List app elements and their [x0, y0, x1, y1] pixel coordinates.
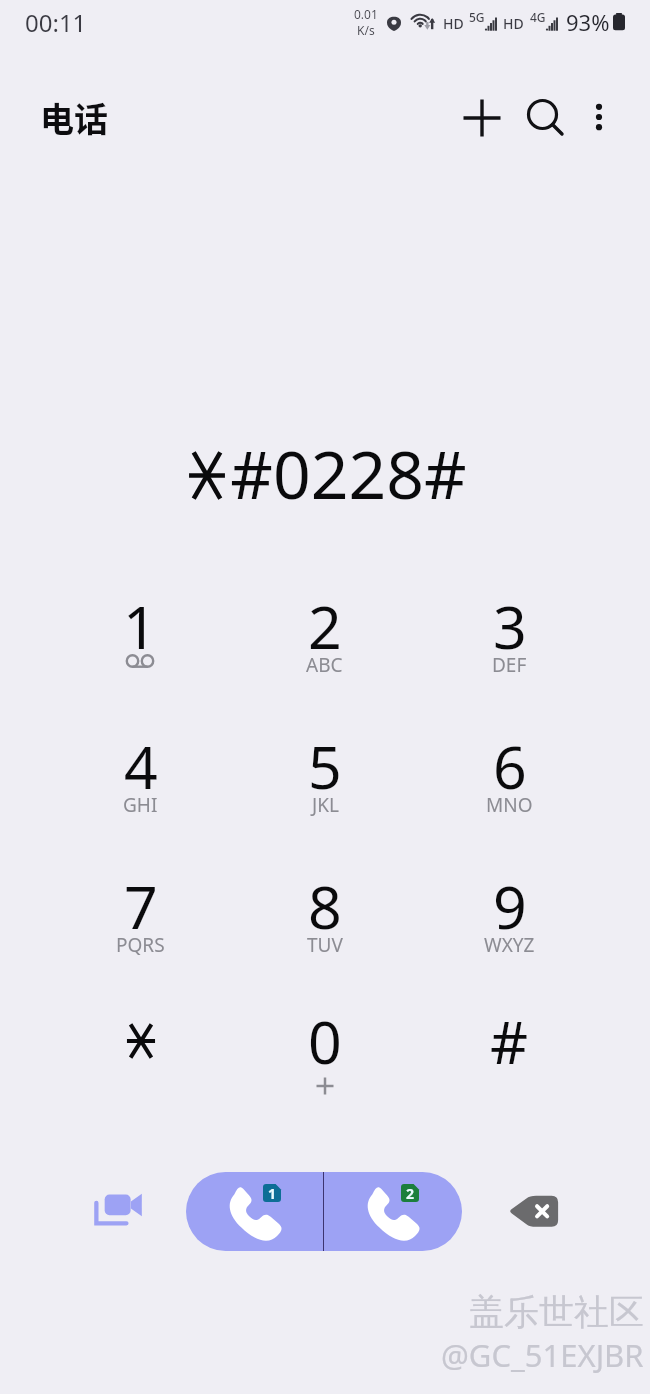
- staticText: #0228#: [230, 428, 467, 518]
- staticText: 2: [406, 1184, 415, 1202]
- button[interactable]: 9: [417, 866, 602, 1001]
- button[interactable]: Add contact: [453, 89, 511, 145]
- button[interactable]: 3: [417, 586, 602, 726]
- staticText: 6: [493, 726, 527, 806]
- staticText: 00:11: [25, 6, 87, 39]
- staticText: K/s: [357, 22, 375, 38]
- button[interactable]: 4: [48, 726, 232, 866]
- staticText: 5G: [469, 9, 485, 25]
- staticText: HD: [503, 14, 524, 33]
- staticText: 8: [308, 866, 342, 946]
- button[interactable]: Search: [517, 89, 575, 145]
- staticText: HD: [443, 14, 464, 33]
- staticText: 3: [493, 586, 527, 666]
- button[interactable]: Call with SIM 2: [324, 1172, 461, 1251]
- button[interactable]: 7: [48, 866, 232, 1001]
- staticText: GHI: [123, 792, 158, 818]
- staticText: 0.01: [354, 6, 378, 22]
- staticText: 1: [123, 586, 157, 666]
- button[interactable]: 2: [232, 586, 417, 726]
- button[interactable]: 0: [232, 1001, 417, 1141]
- staticText: 4: [124, 726, 158, 806]
- staticText: 1: [268, 1184, 277, 1202]
- button[interactable]: [48, 1001, 232, 1141]
- button[interactable]: 1: [48, 586, 232, 726]
- staticText: MNO: [486, 792, 533, 818]
- staticText: 0: [308, 1001, 342, 1081]
- button[interactable]: #: [417, 1001, 602, 1141]
- button[interactable]: Video call: [89, 1182, 153, 1246]
- button[interactable]: 6: [417, 726, 602, 866]
- button[interactable]: 5: [232, 726, 417, 866]
- staticText: 93%: [566, 7, 610, 37]
- staticText: JKL: [312, 792, 339, 818]
- button[interactable]: Call with SIM 1: [186, 1172, 323, 1251]
- button[interactable]: 8: [232, 866, 417, 1001]
- staticText: 5: [308, 726, 342, 806]
- staticText: 4G: [530, 9, 546, 25]
- staticText: 电话: [40, 93, 108, 142]
- staticText: 7: [124, 866, 158, 946]
- staticText: DEF: [492, 652, 527, 678]
- button[interactable]: Backspace: [503, 1177, 569, 1243]
- staticText: 2: [308, 586, 342, 666]
- staticText: ABC: [306, 652, 343, 678]
- staticText: #: [490, 1001, 529, 1081]
- staticText: WXYZ: [484, 932, 535, 958]
- staticText: PQRS: [116, 932, 165, 958]
- staticText: @GC_51EXJBR: [441, 1334, 644, 1376]
- button[interactable]: More options: [573, 91, 625, 143]
- staticText: TUV: [307, 932, 343, 958]
- staticText: 盖乐世社区: [469, 1290, 644, 1334]
- staticText: 9: [493, 866, 527, 946]
